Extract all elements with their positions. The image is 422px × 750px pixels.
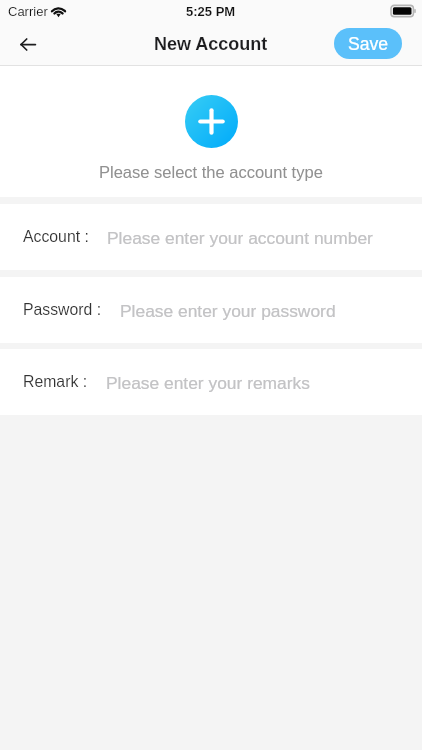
button[interactable]: Save xyxy=(334,28,402,59)
staticText: Please enter your password xyxy=(120,301,336,320)
button[interactable]: Remark : xyxy=(0,349,422,415)
staticText: Please enter your account number xyxy=(107,228,373,247)
staticText: Carrier xyxy=(8,4,48,19)
staticText: 5:25 PM xyxy=(186,4,236,19)
button[interactable]: Password : xyxy=(0,277,422,343)
button[interactable]: Back xyxy=(8,24,48,64)
staticText: Remark : xyxy=(23,373,88,391)
button[interactable]: Select account type xyxy=(185,95,238,148)
staticText: New Account xyxy=(154,34,268,54)
staticText: Please select the account type xyxy=(99,163,323,181)
staticText: Account : xyxy=(23,228,89,246)
staticText: Password : xyxy=(23,301,102,319)
button[interactable]: Account : xyxy=(0,204,422,270)
staticText: Save xyxy=(348,34,389,54)
staticText: Please enter your remarks xyxy=(106,373,310,392)
